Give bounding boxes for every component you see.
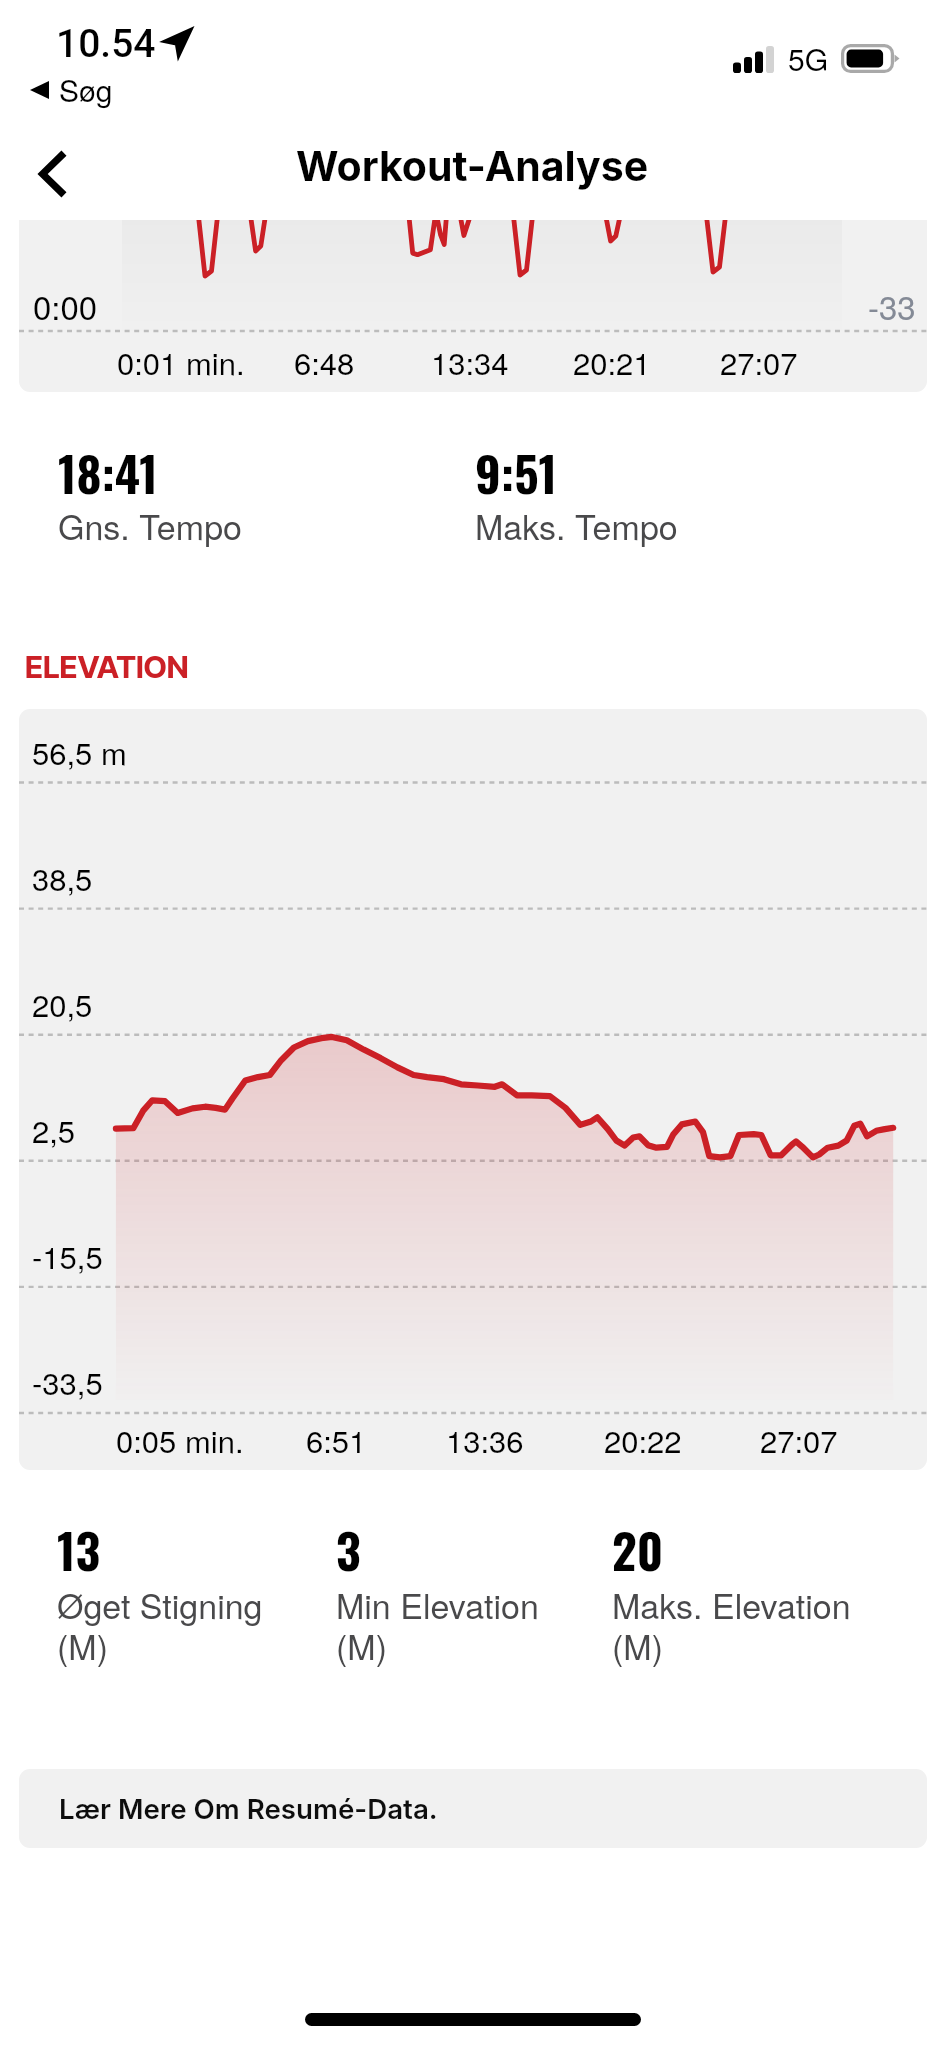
button[interactable]: Back — [8, 130, 96, 218]
staticText: 27:07 — [760, 1417, 838, 1461]
staticText: Workout-Analyse — [296, 141, 649, 191]
staticText: 20:22 — [604, 1417, 682, 1461]
staticText: 20 — [612, 1514, 664, 1585]
staticText: Maks. Tempo — [475, 501, 678, 550]
staticText: 10.54 — [56, 21, 156, 67]
staticText: 13:34 — [431, 339, 509, 383]
staticText: 20,5 — [32, 981, 93, 1025]
staticText: 6:48 — [294, 339, 355, 383]
staticText: 5G — [788, 37, 829, 80]
staticText: 56,5 m — [32, 729, 127, 773]
staticText: Søg — [59, 68, 113, 111]
staticText: Min Elevation (M) — [336, 1580, 539, 1670]
staticText: -15,5 — [32, 1233, 103, 1277]
staticText: 20:21 — [573, 339, 651, 383]
staticText: Lær Mere Om Resumé-Data. — [59, 1792, 438, 1826]
staticText: 2,5 — [32, 1107, 76, 1151]
staticText: Maks. Elevation (M) — [612, 1580, 851, 1670]
staticText: 0:00 — [33, 282, 98, 329]
staticText: 38,5 — [32, 855, 93, 899]
staticText: 0:01 min. — [117, 339, 245, 383]
staticText: 13:36 — [446, 1417, 524, 1461]
staticText: Gns. Tempo — [58, 501, 243, 550]
staticText: 9:51 — [475, 437, 558, 508]
staticText: ELEVATION — [25, 648, 189, 686]
staticText: -33 — [868, 282, 916, 329]
staticText: 6:51 — [306, 1417, 367, 1461]
staticText: 0:05 min. — [116, 1417, 244, 1461]
button[interactable]: Lær Mere Om Resumé-Data. — [19, 1769, 927, 1848]
staticText: Øget Stigning (M) — [57, 1580, 263, 1670]
staticText: 27:07 — [720, 339, 798, 383]
staticText: -33,5 — [32, 1359, 103, 1403]
staticText: 13 — [57, 1514, 101, 1585]
staticText: 3 — [336, 1514, 361, 1585]
staticText: 18:41 — [58, 437, 158, 508]
